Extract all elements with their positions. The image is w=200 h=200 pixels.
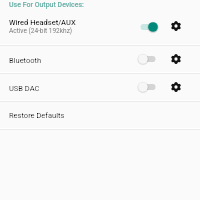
button[interactable]: Restore Defaults bbox=[0, 100, 200, 128]
button[interactable]: Switch off bbox=[135, 78, 161, 96]
button[interactable]: Bluetooth bbox=[0, 45, 200, 73]
button[interactable]: Settings bbox=[169, 80, 183, 94]
button[interactable]: Switch off bbox=[135, 50, 161, 68]
button[interactable]: Wired Headset/AUX bbox=[0, 18, 200, 38]
button[interactable]: Settings bbox=[169, 52, 183, 66]
button[interactable]: Switch on bbox=[135, 18, 161, 36]
staticText: Active (24-bit 192khz) bbox=[9, 27, 73, 35]
staticText: Restore Defaults bbox=[9, 111, 65, 120]
button[interactable]: USB DAC bbox=[0, 73, 200, 101]
staticText: Wired Headset/AUX bbox=[9, 18, 76, 27]
staticText: Use For Output Devices: bbox=[9, 1, 84, 9]
button[interactable]: Settings bbox=[169, 19, 183, 33]
staticText: USB DAC bbox=[9, 84, 40, 93]
staticText: Bluetooth bbox=[9, 56, 42, 65]
